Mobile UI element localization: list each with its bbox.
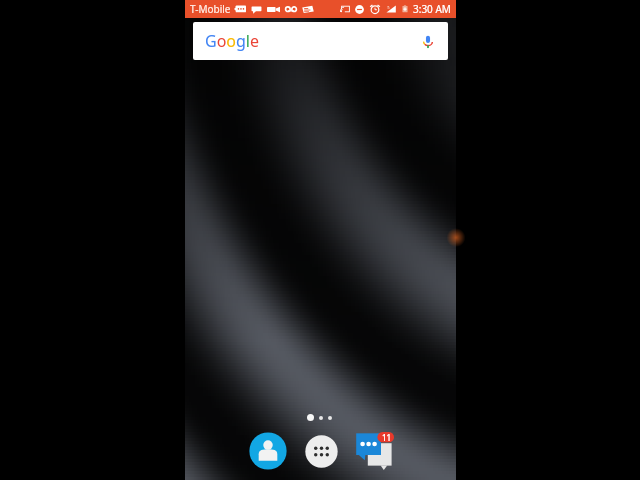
button[interactable]: Messages	[352, 429, 396, 473]
button[interactable]: Voice search	[418, 26, 448, 56]
button[interactable]: Google	[193, 22, 448, 60]
staticText: 11	[382, 432, 392, 443]
staticText: Google	[205, 30, 260, 52]
button[interactable]: Apps	[299, 429, 343, 473]
staticText: T-Mobile	[190, 2, 231, 16]
button[interactable]: Contacts	[246, 429, 290, 473]
staticText: 3:30 AM	[413, 2, 451, 16]
